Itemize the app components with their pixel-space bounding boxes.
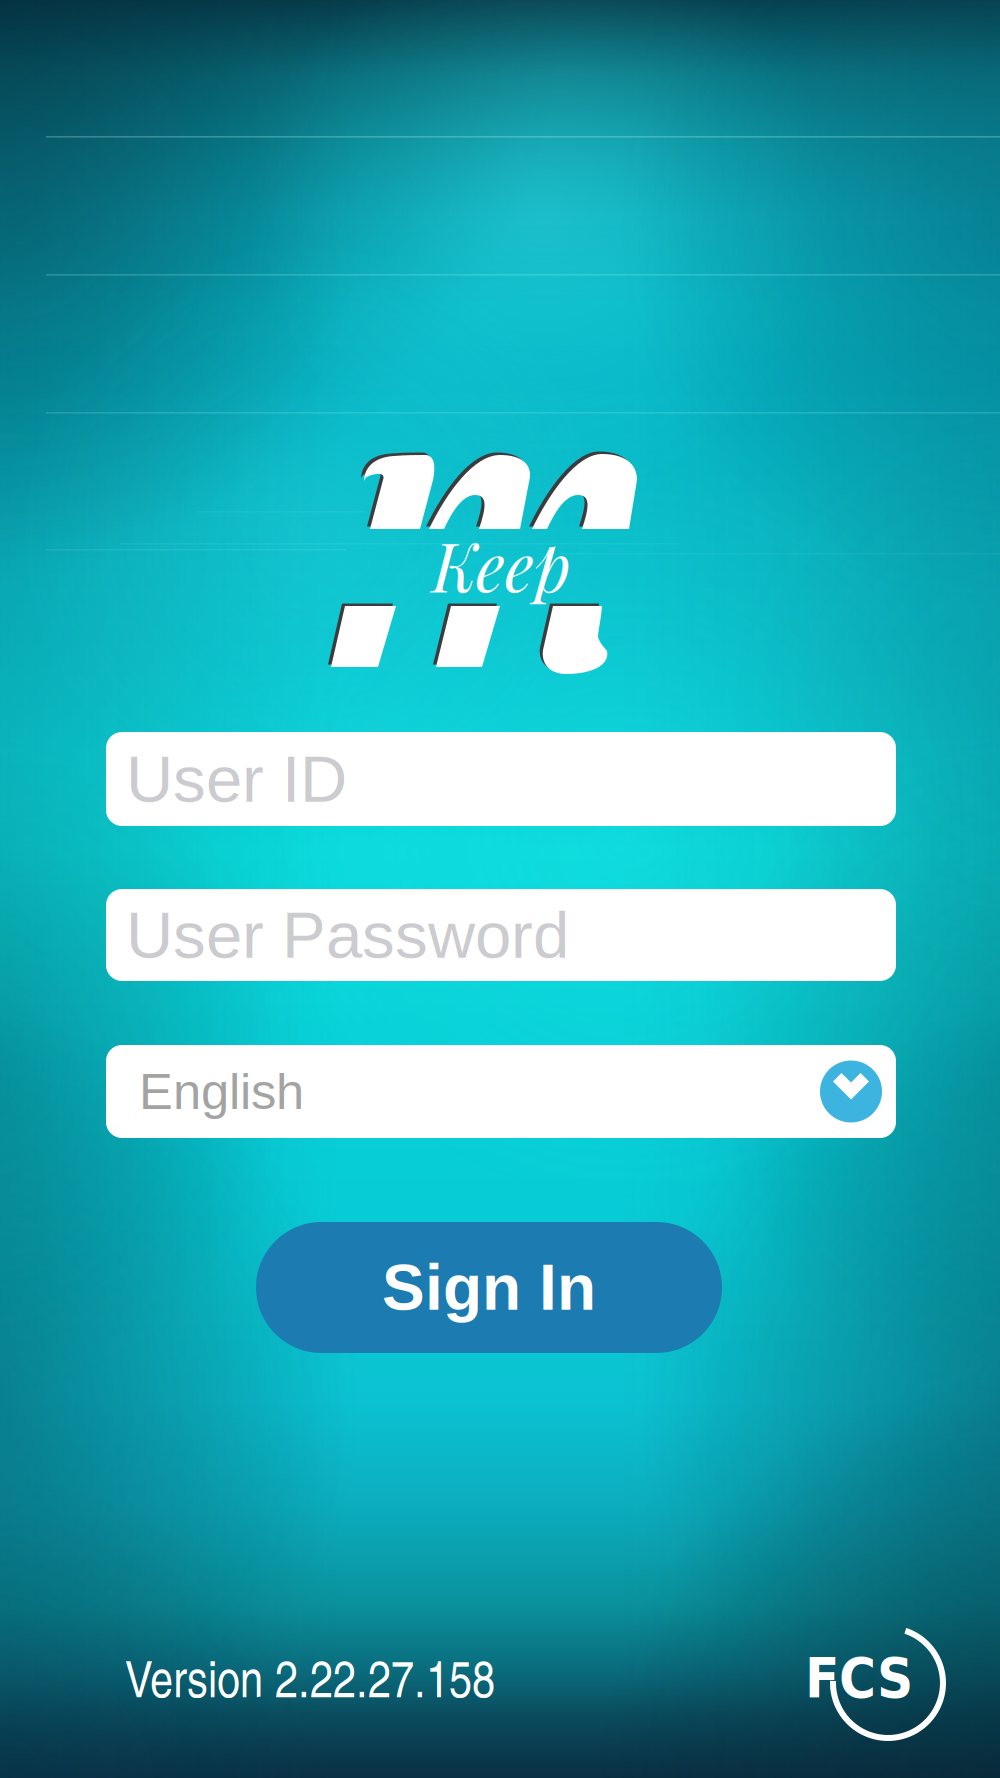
staticText: Version 2.22.27.158 [125,1642,495,1711]
staticText: User ID [126,742,347,815]
staticText: English [139,1063,304,1120]
button[interactable]: Sign In [256,1222,722,1353]
button[interactable]: User Password [106,889,896,981]
button[interactable]: English [106,1045,896,1138]
button[interactable]: User ID [106,732,896,826]
staticText: FCS [805,1645,913,1710]
staticText: User Password [126,898,569,971]
staticText: Keep [432,520,571,609]
staticText: Sign In [382,1252,596,1323]
